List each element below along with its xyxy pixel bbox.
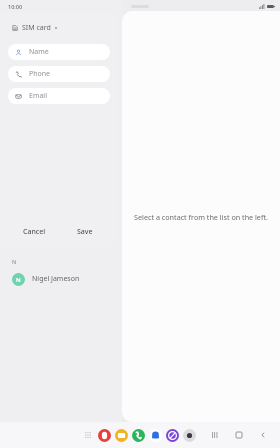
button[interactable]: SIM card — [10, 21, 60, 35]
staticText: SIM card — [22, 23, 51, 33]
button[interactable]: Phone — [8, 66, 110, 82]
staticText: Nigel Jameson — [32, 274, 80, 284]
button[interactable]: All apps — [82, 429, 94, 441]
button[interactable]: Recents — [208, 428, 222, 442]
button[interactable]: Cancel — [18, 224, 51, 240]
button[interactable]: Home — [232, 428, 246, 442]
button[interactable]: Email — [8, 88, 110, 104]
button[interactable]: Recorder — [98, 429, 111, 442]
staticText: N — [16, 276, 21, 284]
staticText: N — [12, 258, 17, 265]
button[interactable]: Save — [72, 224, 98, 240]
button[interactable]: Files — [115, 429, 128, 442]
button[interactable]: Phone — [132, 429, 145, 442]
button[interactable]: Name — [8, 44, 110, 60]
staticText: Save — [77, 227, 93, 237]
button[interactable]: N — [0, 268, 122, 290]
button[interactable]: Camera — [183, 429, 196, 442]
button[interactable]: K — [0, 230, 122, 252]
staticText: 10:00 — [8, 3, 23, 10]
staticText: Email — [29, 91, 47, 101]
staticText: Phone — [29, 69, 51, 79]
staticText: Cancel — [23, 227, 46, 237]
staticText: Select a contact from the list on the le… — [134, 212, 268, 222]
button[interactable]: Messages — [149, 429, 162, 442]
button[interactable]: Browser — [166, 429, 179, 442]
staticText: Name — [29, 47, 49, 57]
button[interactable]: Back — [256, 428, 270, 442]
